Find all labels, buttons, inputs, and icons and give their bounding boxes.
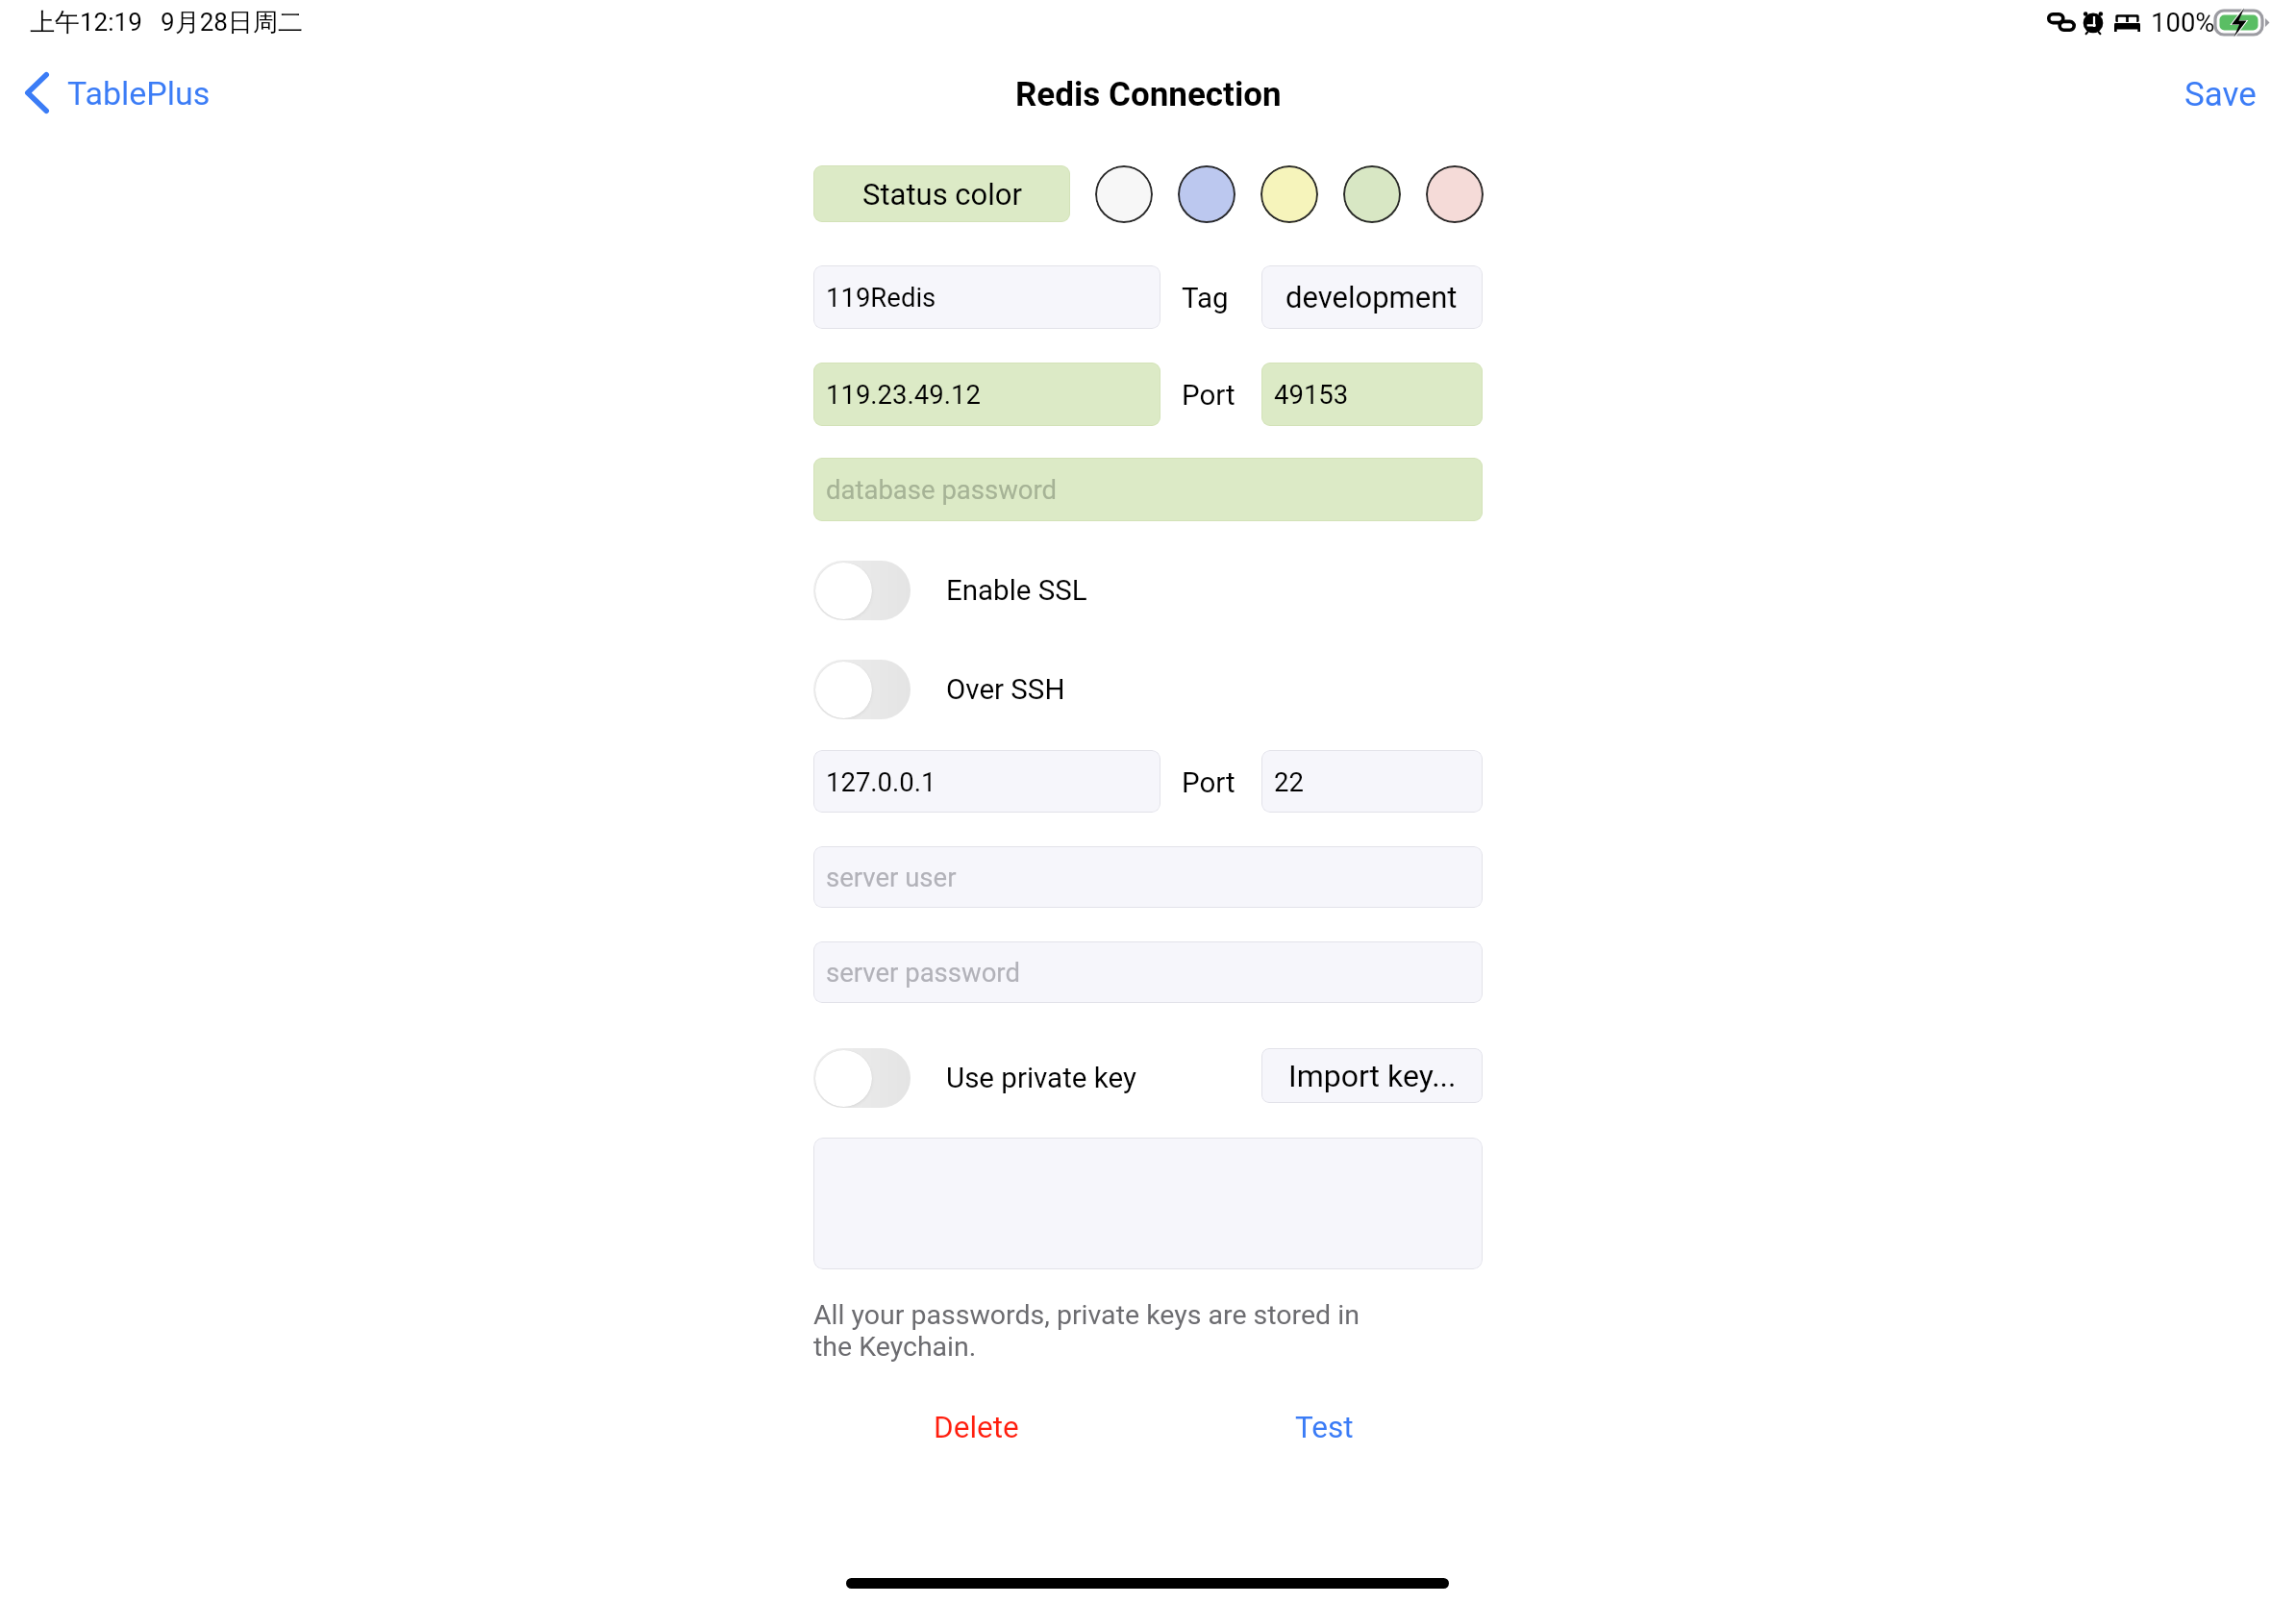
staticText: 100% [2151,7,2215,38]
button[interactable]: Status colour swatch [1178,165,1235,223]
staticText: Status color [862,177,1022,212]
staticText: 上午12:19 9月28日周二 [30,7,303,38]
staticText: Delete [934,1410,1019,1445]
button[interactable]: TablePlus [15,66,220,119]
button[interactable]: Import key... [1261,1048,1483,1103]
staticText: Redis Connection [1015,75,1282,114]
staticText: Tag [1182,282,1229,315]
staticText: development [1285,280,1458,314]
button[interactable]: database password [813,458,1483,521]
staticText: Port [1182,766,1235,800]
staticText: Use private key [946,1062,1136,1095]
staticText: 127.0.0.1 [826,766,936,797]
button[interactable]: server user [813,846,1483,908]
button[interactable]: server password [813,941,1483,1003]
staticText: server user [826,862,957,892]
button[interactable]: Use private key toggle [813,1048,911,1108]
staticText: 119.23.49.12 [826,379,981,410]
button[interactable]: Status colour swatch [1426,165,1484,223]
button[interactable]: 49153 [1261,363,1483,426]
button[interactable]: 22 [1261,750,1483,813]
staticText: Enable SSL [946,574,1087,608]
button[interactable]: Save [2175,65,2270,124]
staticText: 49153 [1274,379,1349,410]
staticText: database password [826,474,1058,505]
button[interactable]: development [1261,265,1483,329]
button[interactable]: Status color [813,165,1070,222]
staticText: Save [2184,75,2257,114]
button[interactable]: 119.23.49.12 [813,363,1160,426]
staticText: Import key... [1288,1058,1457,1094]
button[interactable]: Test [1285,1400,1363,1455]
button[interactable]: Status colour swatch [1260,165,1318,223]
button[interactable]: Delete [924,1400,1029,1455]
staticText: Port [1182,379,1235,413]
staticText: Test [1295,1410,1354,1445]
button[interactable]: Status colour swatch [1343,165,1401,223]
button[interactable]: Over SSH toggle [813,660,911,719]
button[interactable]: Status colour swatch [1095,165,1153,223]
staticText: 119Redis [826,282,936,313]
button[interactable]: 119Redis [813,265,1160,329]
staticText: TablePlus [67,74,211,113]
staticText: All your passwords, private keys are sto… [813,1299,1360,1363]
staticText: server password [826,957,1020,988]
button[interactable]: 127.0.0.1 [813,750,1160,813]
staticText: 22 [1274,766,1304,797]
button[interactable]: Enable SSL toggle [813,561,911,620]
staticText: Over SSH [946,673,1065,707]
